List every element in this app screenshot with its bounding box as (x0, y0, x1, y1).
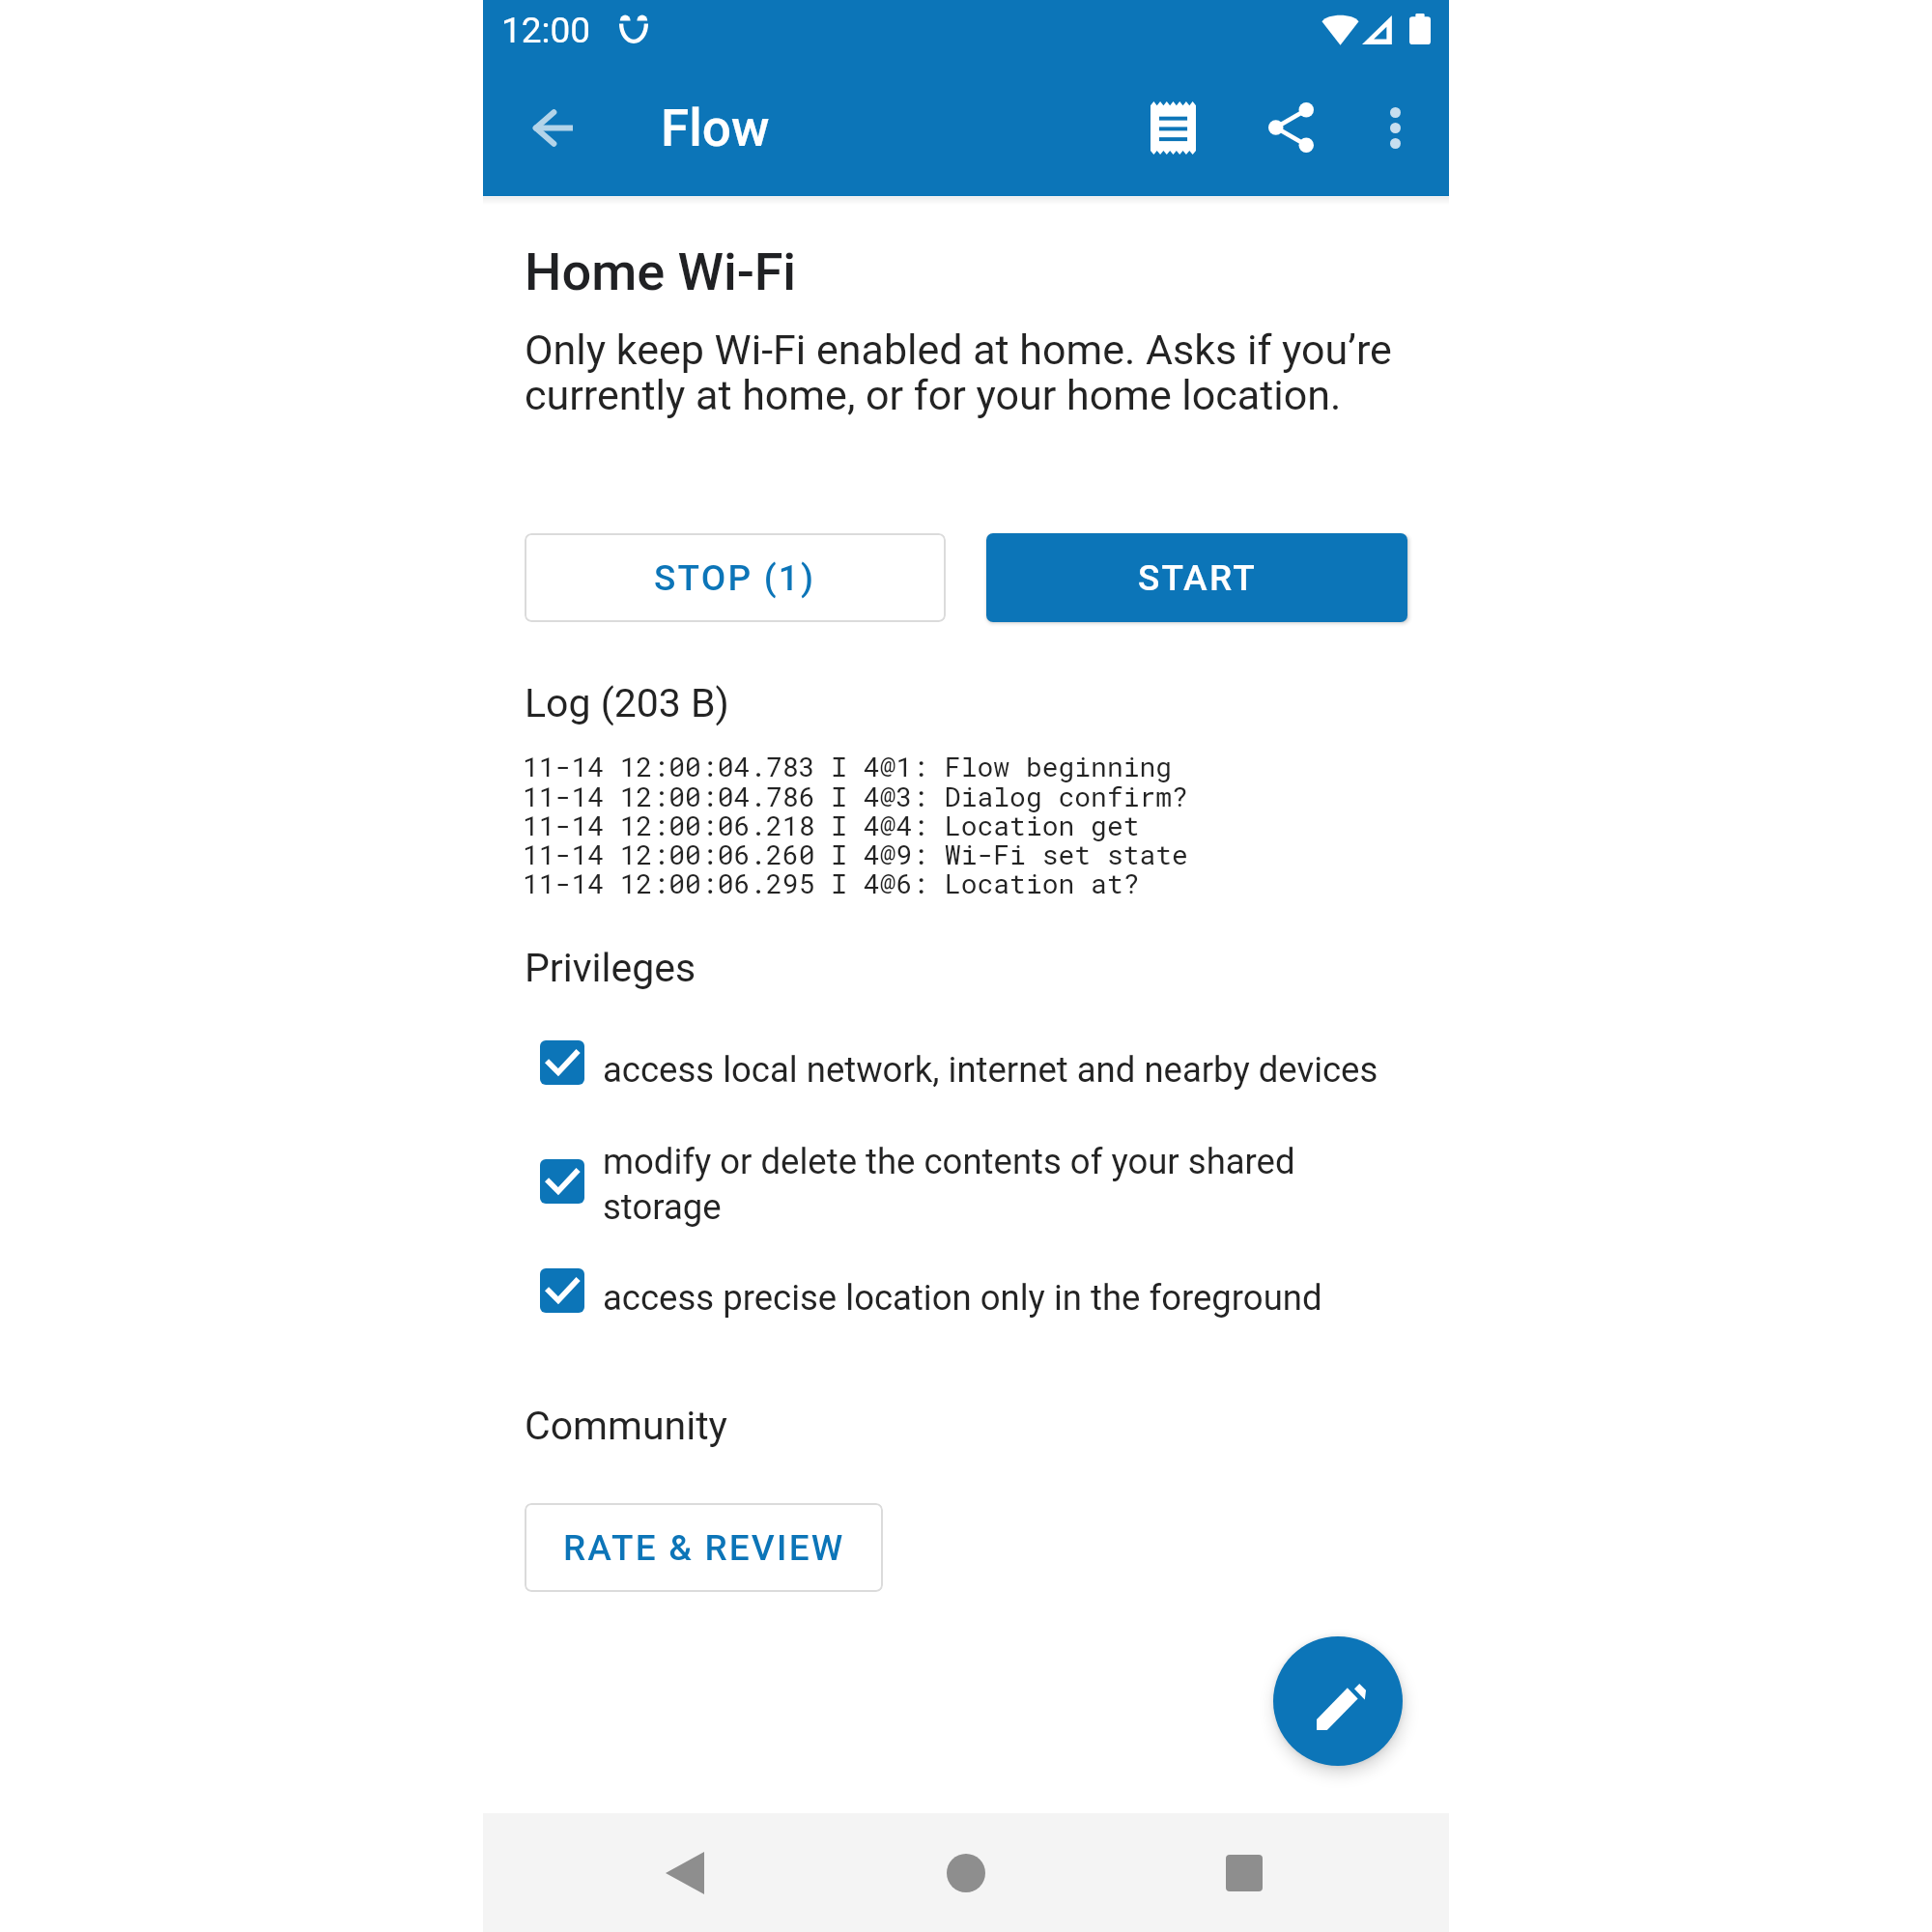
button[interactable]: START (986, 533, 1407, 622)
button[interactable]: access local network, internet and nearb… (540, 1040, 1407, 1085)
staticText: START (1138, 557, 1257, 599)
button[interactable]: Share (1247, 84, 1334, 171)
staticText: access local network, internet and nearb… (603, 1049, 1378, 1091)
staticText: RATE & REVIEW (563, 1527, 845, 1569)
button[interactable]: Recent apps (1201, 1830, 1288, 1917)
staticText: Only keep Wi-Fi enabled at home. Asks if… (525, 326, 1392, 420)
button[interactable]: RATE & REVIEW (525, 1503, 883, 1592)
button[interactable]: Navigate up (509, 84, 596, 171)
button[interactable]: More options (1351, 84, 1438, 171)
button[interactable]: access precise location only in the fore… (540, 1268, 1407, 1313)
staticText: Community (525, 1403, 728, 1449)
button[interactable]: STOP (1) (525, 533, 946, 622)
button[interactable]: Edit (1273, 1636, 1403, 1766)
staticText: modify or delete the contents of your sh… (603, 1141, 1295, 1228)
staticText: access precise location only in the fore… (603, 1277, 1322, 1319)
button[interactable]: modify or delete the contents of your sh… (540, 1159, 1407, 1249)
button[interactable]: Log (1129, 84, 1216, 171)
staticText: STOP (1) (654, 557, 816, 599)
staticText: Flow (661, 99, 770, 158)
staticText: Privileges (525, 945, 696, 991)
staticText: Log (203 B) (525, 680, 729, 726)
button[interactable]: Back (641, 1830, 728, 1917)
button[interactable]: Home (923, 1830, 1009, 1917)
staticText: Home Wi-Fi (525, 241, 797, 302)
staticText: 12:00 (501, 10, 591, 51)
staticText: 11-14 12:00:04.783 I 4@1: Flow beginning… (523, 749, 1188, 901)
